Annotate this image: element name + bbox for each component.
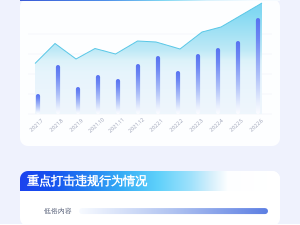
staticText: 重点打击违规行为情况 — [27, 174, 147, 188]
staticText: 2021.8 — [48, 121, 64, 129]
staticText: 2022.5 — [228, 121, 244, 129]
staticText: 2022.4 — [208, 121, 224, 129]
staticText: 2021.12 — [126, 121, 145, 129]
staticText: 2022.3 — [188, 121, 204, 129]
staticText: 2021.9 — [68, 121, 84, 129]
staticText: 2021.11 — [106, 121, 125, 129]
staticText: 2022.2 — [168, 121, 184, 129]
staticText: 2021.10 — [86, 121, 105, 129]
staticText: 2022.6 — [248, 121, 264, 129]
staticText: 低俗内容 — [44, 207, 72, 215]
staticText: 2021.7 — [28, 121, 44, 129]
staticText: 2022.1 — [148, 121, 164, 129]
